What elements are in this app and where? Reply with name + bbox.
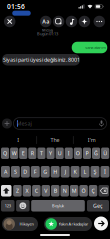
- staticText: Ö: [82, 187, 86, 194]
- button[interactable]: [4, 16, 15, 27]
- staticText: Bugün 01:13: [37, 31, 58, 36]
- staticText: G: [43, 168, 47, 175]
- button[interactable]: Geç: [87, 200, 109, 211]
- staticText: H: [53, 168, 57, 175]
- button[interactable]: G: [41, 166, 50, 177]
- staticText: Z: [16, 187, 19, 194]
- staticText: A: [4, 168, 7, 175]
- button[interactable]: Hikayen: [2, 217, 38, 231]
- staticText: Mesaj: [42, 27, 53, 33]
- button[interactable]: I: [1, 134, 35, 145]
- staticText: F: [34, 168, 37, 175]
- staticText: O: [76, 150, 80, 157]
- button[interactable]: O: [74, 147, 82, 159]
- button[interactable]: J: [61, 166, 70, 177]
- button[interactable]: Yakın Arkadaşlar: [44, 217, 92, 231]
- button[interactable]: I: [65, 147, 73, 159]
- staticText: Hikayen: [19, 221, 33, 227]
- button[interactable]: [53, 16, 64, 27]
- staticText: M: [72, 187, 77, 194]
- staticText: N: [63, 187, 67, 194]
- button[interactable]: [79, 16, 90, 27]
- button[interactable]: V: [41, 185, 50, 196]
- button[interactable]: [66, 16, 77, 27]
- staticText: L: [83, 168, 86, 175]
- staticText: Y: [49, 150, 52, 157]
- button[interactable]: The: [38, 134, 72, 145]
- button[interactable]: [93, 16, 105, 27]
- staticText: D: [23, 168, 27, 175]
- staticText: 123: [5, 203, 11, 208]
- staticText: Mesaj: [16, 120, 31, 127]
- button[interactable]: C: [32, 185, 41, 196]
- button[interactable]: M: [70, 185, 78, 196]
- staticText: sana atarım: [85, 45, 106, 50]
- staticText: K: [74, 168, 77, 175]
- button[interactable]: Z: [13, 185, 22, 196]
- staticText: S: [14, 168, 17, 175]
- staticText: 01:56: [7, 2, 25, 11]
- staticText: X: [25, 187, 28, 194]
- button[interactable]: W: [10, 147, 18, 159]
- staticText: Yakın Arkadaşlar: [58, 221, 88, 227]
- button[interactable]: Ö: [79, 185, 88, 196]
- button[interactable]: T: [37, 147, 45, 159]
- button[interactable]: Boşluk: [31, 200, 85, 211]
- staticText: I'm: [88, 136, 96, 144]
- staticText: Ş: [93, 168, 96, 175]
- button[interactable]: Q: [1, 147, 9, 159]
- staticText: W: [12, 150, 17, 157]
- staticText: Geç: [93, 202, 103, 209]
- staticText: Siyasi parti üyesi değilsiniz. 8001: [3, 56, 80, 63]
- button[interactable]: D: [21, 166, 30, 177]
- button[interactable]: [94, 216, 108, 230]
- staticText: İ: [104, 168, 106, 175]
- button[interactable]: Mesaj: [13, 117, 107, 130]
- staticText: Ğ: [94, 150, 98, 157]
- button[interactable]: L: [81, 166, 89, 177]
- button[interactable]: B: [51, 185, 59, 196]
- staticText: I: [68, 150, 70, 157]
- button[interactable]: X: [23, 185, 31, 196]
- staticText: T: [40, 150, 43, 157]
- staticText: Ç: [91, 187, 94, 194]
- button[interactable]: İ: [100, 166, 109, 177]
- button[interactable]: H: [51, 166, 60, 177]
- button[interactable]: I'm: [75, 134, 109, 145]
- staticText: R: [31, 150, 34, 157]
- staticText: U: [58, 150, 62, 157]
- staticText: Q: [3, 150, 7, 157]
- button[interactable]: Ü: [101, 147, 109, 159]
- button[interactable]: A: [1, 166, 10, 177]
- button[interactable]: [16, 200, 30, 211]
- button[interactable]: Ç: [89, 185, 97, 196]
- button[interactable]: F: [31, 166, 40, 177]
- button[interactable]: K: [71, 166, 79, 177]
- staticText: V: [44, 187, 47, 194]
- button[interactable]: Ş: [90, 166, 99, 177]
- staticText: The: [50, 136, 59, 144]
- button[interactable]: P: [83, 147, 91, 159]
- staticText: P: [85, 150, 88, 157]
- button[interactable]: U: [56, 147, 64, 159]
- staticText: Aa: [42, 18, 49, 25]
- button[interactable]: [98, 185, 109, 196]
- button[interactable]: R: [28, 147, 36, 159]
- staticText: B: [54, 187, 57, 194]
- button[interactable]: S: [11, 166, 20, 177]
- button[interactable]: [2, 118, 12, 128]
- staticText: I: [17, 136, 19, 144]
- staticText: C: [35, 187, 38, 194]
- button[interactable]: N: [60, 185, 69, 196]
- button[interactable]: [1, 185, 11, 196]
- button[interactable]: E: [19, 147, 27, 159]
- staticText: Ü: [103, 150, 107, 157]
- button[interactable]: Aa: [40, 16, 51, 27]
- staticText: E: [22, 150, 25, 157]
- staticText: Boşluk: [52, 203, 64, 208]
- button[interactable]: Y: [46, 147, 55, 159]
- button[interactable]: 123: [1, 200, 14, 211]
- button[interactable]: Ğ: [92, 147, 100, 159]
- staticText: J: [65, 168, 66, 175]
